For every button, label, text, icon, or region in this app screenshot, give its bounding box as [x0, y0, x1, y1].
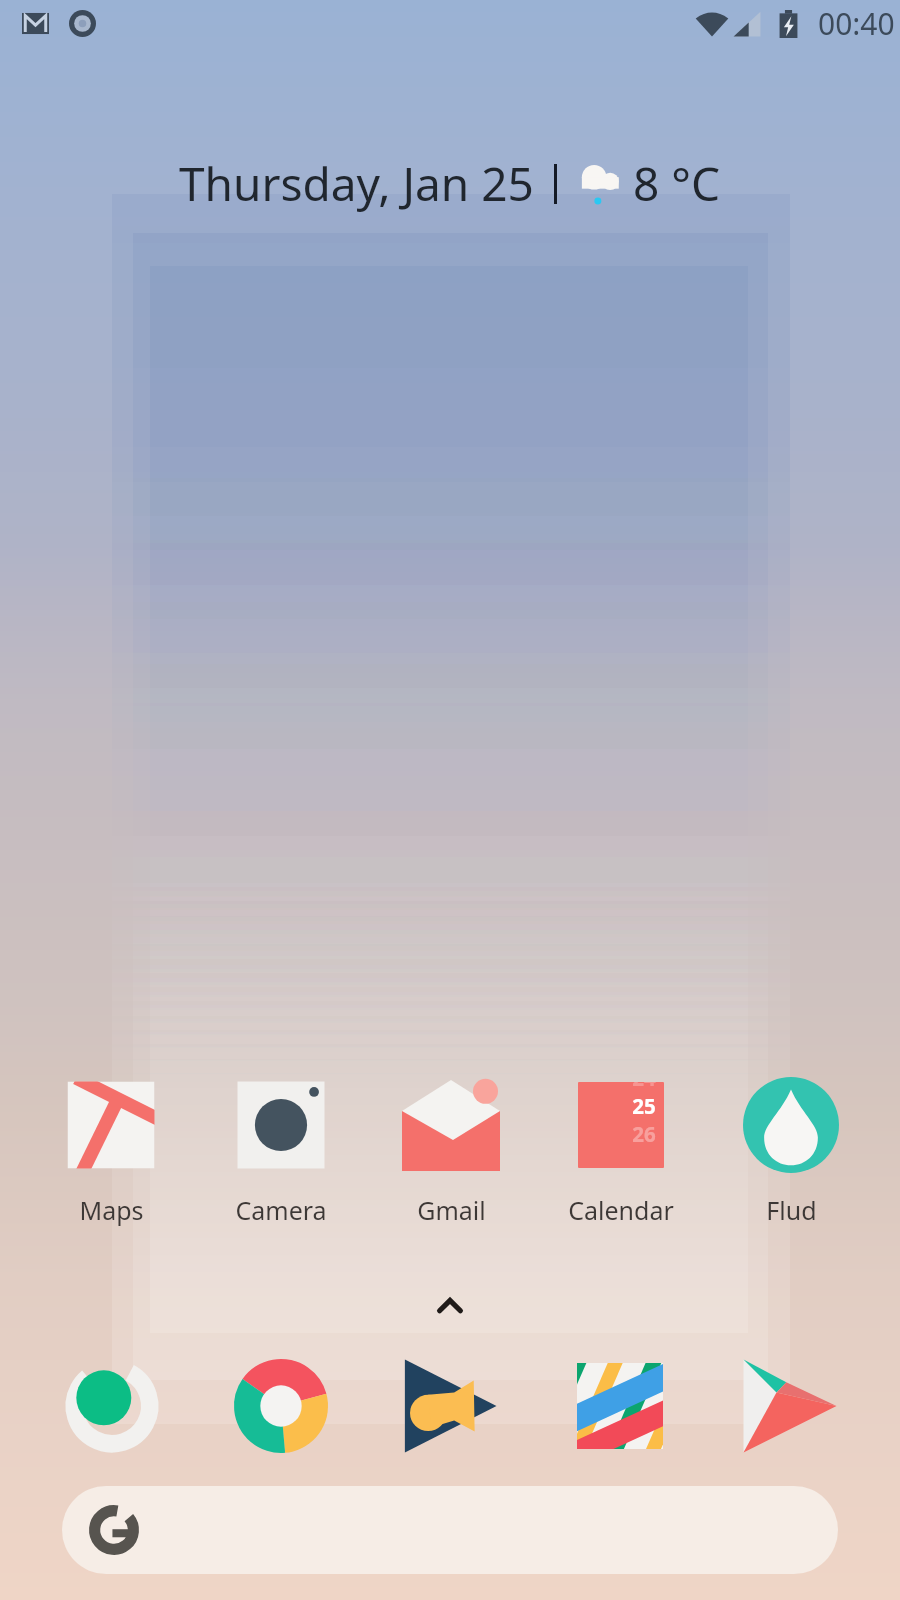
button[interactable]: Muzei — [535, 1356, 705, 1456]
button[interactable]: 24 — [536, 1075, 706, 1227]
button[interactable]: Media player — [365, 1356, 535, 1456]
button[interactable]: Phone — [27, 1356, 196, 1456]
button[interactable]: Gmail — [366, 1075, 536, 1227]
button[interactable]: Maps — [26, 1075, 196, 1227]
other: Google search — [88, 1504, 140, 1556]
staticText: 00:40 — [818, 3, 895, 44]
staticText: 26 — [632, 1120, 656, 1148]
staticText: Calendar — [568, 1193, 674, 1227]
button[interactable]: Open app drawer — [417, 1272, 483, 1338]
button[interactable]: Flud — [706, 1075, 876, 1227]
staticText: 8 °C — [633, 152, 721, 215]
button[interactable]: Camera — [196, 1075, 366, 1227]
staticText: Thursday, Jan 25 — [179, 152, 534, 215]
staticText: 24 — [632, 1082, 656, 1092]
staticText: Flud — [766, 1193, 817, 1227]
staticText: Maps — [79, 1193, 144, 1227]
button[interactable]: Chrome — [196, 1356, 365, 1456]
staticText: 25 — [632, 1092, 656, 1120]
button[interactable]: Thursday, Jan 25 — [0, 152, 900, 215]
staticText: Camera — [235, 1193, 327, 1227]
button[interactable]: Play Store — [705, 1356, 875, 1456]
staticText: Gmail — [417, 1193, 486, 1227]
button[interactable]: Google search — [62, 1486, 838, 1574]
